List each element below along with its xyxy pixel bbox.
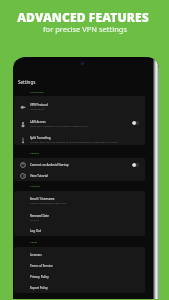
staticText: Allow local networks to be routed outsid… [30,124,89,127]
button[interactable]: Terms of Service [14,260,145,271]
staticText: Licenses [30,253,42,257]
staticText: About [30,240,38,243]
button[interactable]: Split Tunneling [14,131,145,147]
staticText: for precise VPN settings [43,24,127,34]
button[interactable]: View Tutorial [14,170,145,181]
button[interactable]: Licenses [14,249,145,260]
staticText: Export Policy [30,286,48,290]
staticText: Log Out [30,229,42,233]
staticText: VPN Protocol [30,103,49,107]
button[interactable]: VPN Protocol [14,98,145,114]
staticText: ADVANCED FEATURES [17,9,149,25]
staticText: Choose apps that can connect to the inte… [30,140,119,143]
button[interactable]: Toggle LAN Access [132,121,139,125]
button[interactable]: Export Policy [14,282,145,293]
staticText: General [30,151,40,154]
staticText: Connection [30,90,44,93]
staticText: roberto.gomes@vpnname.com [30,201,67,204]
staticText: Split Tunneling [30,136,51,140]
staticText: WireGuard® [30,107,45,110]
button[interactable]: Connect on Android Startup [14,159,145,170]
button[interactable]: Email / Username [14,192,145,208]
staticText: Privacy Policy [30,275,49,279]
button[interactable]: Renewal Date [14,209,145,225]
staticText: Renewal Date [30,214,49,218]
staticText: Settings [18,79,36,85]
button[interactable]: Log Out [14,225,145,236]
staticText: 9/16/23 [30,218,40,221]
staticText: Email / Username [30,197,55,201]
button[interactable]: LAN Access [14,115,145,131]
staticText: Connect on Android Startup [30,163,69,167]
staticText: LAN Access [30,120,46,124]
staticText: Terms of Service [30,264,53,268]
staticText: Account [30,184,40,187]
button[interactable]: Toggle Connect on Android Startup [132,163,139,167]
staticText: View Tutorial [30,174,48,178]
button[interactable]: Privacy Policy [14,271,145,282]
